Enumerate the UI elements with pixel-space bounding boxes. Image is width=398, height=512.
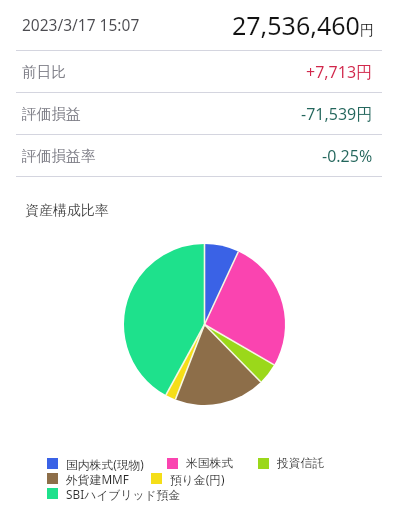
- staticText: 預り金(円): [170, 471, 225, 486]
- staticText: -0.25%: [322, 145, 373, 167]
- button[interactable]: SBIハイブリッド預金: [47, 486, 181, 501]
- staticText: +7,713円: [306, 61, 373, 83]
- staticText: 国内株式(現物): [66, 456, 144, 471]
- staticText: 資産構成比率: [25, 202, 109, 220]
- button[interactable]: 外貨建MMF: [47, 471, 129, 486]
- staticText: 円: [360, 22, 374, 40]
- button[interactable]: 投資信託: [258, 456, 325, 471]
- staticText: 外貨建MMF: [66, 471, 129, 486]
- staticText: 評価損益: [22, 105, 81, 124]
- staticText: -71,539円: [301, 103, 373, 125]
- staticText: 評価損益率: [22, 147, 96, 166]
- staticText: SBIハイブリッド預金: [66, 486, 181, 501]
- staticText: 2023/3/17 15:07: [22, 14, 140, 35]
- staticText: 投資信託: [277, 456, 325, 471]
- staticText: 米国株式: [186, 456, 234, 471]
- staticText: 27,536,460: [232, 8, 360, 42]
- button[interactable]: 預り金(円): [151, 471, 225, 486]
- staticText: 前日比: [22, 63, 67, 82]
- button[interactable]: 評価損益: [0, 93, 398, 135]
- button[interactable]: 米国株式: [167, 456, 234, 471]
- button[interactable]: 評価損益率: [0, 135, 398, 177]
- button[interactable]: 国内株式(現物): [47, 456, 144, 471]
- button[interactable]: 前日比: [0, 51, 398, 93]
